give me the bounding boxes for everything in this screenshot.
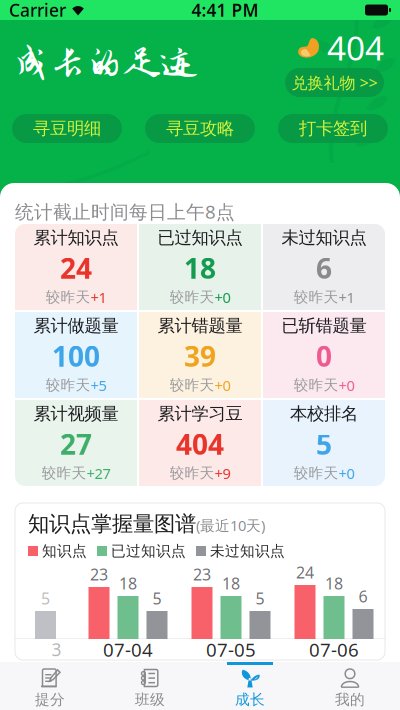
staticText: 较昨天 <box>293 288 338 306</box>
staticText: 24 <box>60 249 92 286</box>
staticText: +0 <box>214 287 230 307</box>
staticText: 较昨天 <box>169 464 214 482</box>
staticText: 07-05 <box>206 637 256 662</box>
staticText: +0 <box>338 463 354 483</box>
staticText: 23 <box>90 564 108 585</box>
button[interactable]: 我的 <box>300 662 400 710</box>
staticText: 27 <box>60 425 92 462</box>
staticText: 23 <box>193 564 211 585</box>
staticText: +0 <box>214 375 230 395</box>
staticText: +0 <box>338 375 354 395</box>
staticText: 18 <box>119 573 137 594</box>
staticText: 6 <box>316 249 332 286</box>
staticText: 累计知识点 <box>33 227 118 248</box>
button[interactable]: 未过知识点 <box>263 224 385 310</box>
staticText: 100 <box>52 337 100 374</box>
staticText: 5 <box>255 588 264 609</box>
staticText: 07-04 <box>103 637 153 662</box>
staticText: 4:41 PM <box>191 0 258 21</box>
staticText: +5 <box>90 375 106 395</box>
staticText: 404 <box>327 25 384 70</box>
staticText: +27 <box>86 463 110 483</box>
staticText: 累计视频量 <box>33 403 118 424</box>
button[interactable]: 寻豆攻略 <box>145 114 255 143</box>
button[interactable]: 打卡签到 <box>278 114 388 143</box>
staticText: 打卡签到 <box>299 118 367 139</box>
staticText: +9 <box>214 463 230 483</box>
staticText: 已过知识点 <box>111 542 186 560</box>
staticText: +1 <box>338 287 354 307</box>
staticText: 较昨天 <box>169 376 214 394</box>
staticText: 已斩错题量 <box>281 315 366 336</box>
staticText: 兑换礼物 >> <box>291 72 377 93</box>
staticText: 24 <box>296 562 314 583</box>
button[interactable]: 累计错题量 <box>139 312 261 398</box>
staticText: 班级 <box>135 690 165 708</box>
button[interactable]: 兑换礼物 >> <box>285 68 384 97</box>
button[interactable]: 寻豆明细 <box>12 114 122 143</box>
staticText: 累计错题量 <box>157 315 242 336</box>
staticText: 3 <box>51 638 61 661</box>
staticText: 累计做题量 <box>33 315 118 336</box>
staticText: 成长的足迹 <box>12 42 197 84</box>
staticText: 较昨天 <box>45 288 90 306</box>
button[interactable]: 班级 <box>100 662 200 710</box>
staticText: 本校排名 <box>290 403 358 424</box>
staticText: 寻豆明细 <box>33 118 101 139</box>
staticText: 未过知识点 <box>210 542 285 560</box>
staticText: (最近10天) <box>196 515 265 535</box>
button[interactable]: 累计做题量 <box>15 312 137 398</box>
button[interactable]: 已斩错题量 <box>263 312 385 398</box>
staticText: 6 <box>358 586 367 607</box>
staticText: 5 <box>152 588 161 609</box>
button[interactable]: 累计视频量 <box>15 400 137 486</box>
staticText: Carrier <box>9 0 66 21</box>
staticText: +1 <box>90 287 106 307</box>
staticText: 5 <box>41 588 50 609</box>
button[interactable]: 累计学习豆 <box>139 400 261 486</box>
button[interactable]: 本校排名 <box>263 400 385 486</box>
staticText: 较昨天 <box>41 464 86 482</box>
staticText: 较昨天 <box>169 288 214 306</box>
staticText: 404 <box>176 425 224 462</box>
staticText: 18 <box>222 573 240 594</box>
staticText: 知识点掌握量图谱 <box>28 511 196 537</box>
staticText: 统计截止时间每日上午8点 <box>15 199 235 224</box>
staticText: 0 <box>316 337 332 374</box>
staticText: 39 <box>184 337 216 374</box>
staticText: 我的 <box>335 690 365 708</box>
staticText: 07-06 <box>309 637 359 662</box>
staticText: 未过知识点 <box>281 227 366 248</box>
staticText: 较昨天 <box>45 376 90 394</box>
staticText: 累计学习豆 <box>157 403 242 424</box>
staticText: 18 <box>325 573 343 594</box>
staticText: 已过知识点 <box>157 227 242 248</box>
button[interactable]: 累计知识点 <box>15 224 137 310</box>
staticText: 较昨天 <box>293 376 338 394</box>
staticText: 寻豆攻略 <box>166 118 234 139</box>
button[interactable]: 提分 <box>0 662 100 710</box>
staticText: 18 <box>184 249 216 286</box>
button[interactable]: 成长 <box>200 662 300 710</box>
staticText: 5 <box>316 425 332 462</box>
staticText: 成长 <box>235 690 265 708</box>
staticText: 知识点 <box>42 542 87 560</box>
staticText: 提分 <box>35 690 65 708</box>
staticText: 较昨天 <box>293 464 338 482</box>
button[interactable]: 已过知识点 <box>139 224 261 310</box>
